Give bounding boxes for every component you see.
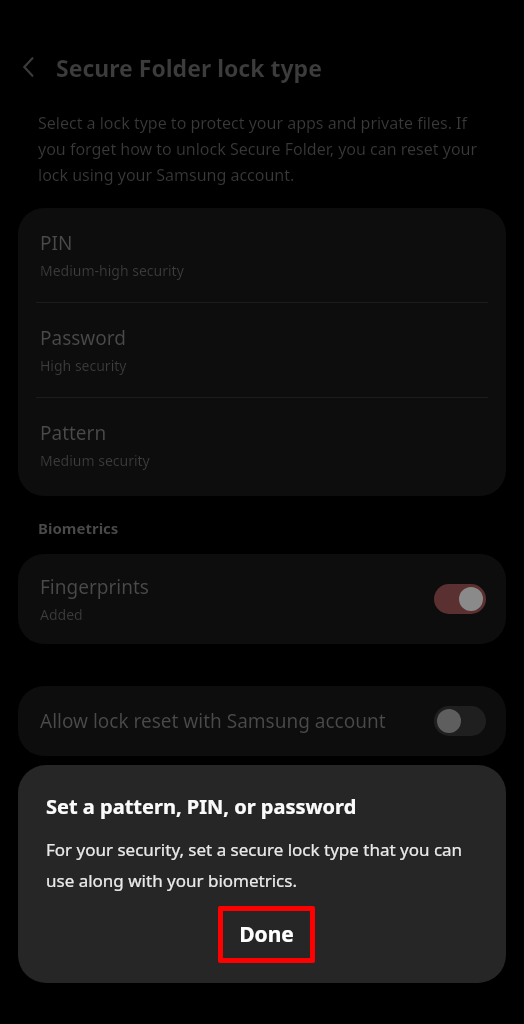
button[interactable]: Toggle off [434,706,486,736]
staticText: Select a lock type to protect your apps … [38,112,486,186]
staticText: PIN [40,230,73,256]
button[interactable]: Done [223,911,310,958]
button[interactable]: Password [18,303,506,397]
button[interactable]: Toggle on [434,584,486,614]
staticText: Medium-high security [40,261,184,280]
staticText: Added [40,605,83,624]
staticText: Password [40,325,126,351]
button[interactable]: PIN [18,208,506,302]
staticText: Secure Folder lock type [56,52,322,83]
staticText: High security [40,356,127,375]
staticText: Done [239,920,294,949]
button[interactable]: Fingerprints [18,554,506,644]
staticText: Allow lock reset with Samsung account [40,708,386,734]
staticText: Fingerprints [40,574,149,600]
staticText: For your security, set a secure lock typ… [46,838,478,892]
button[interactable]: Pattern [18,398,506,496]
staticText: Set a pattern, PIN, or password [46,793,357,820]
button[interactable]: Allow lock reset with Samsung account [18,686,506,756]
staticText: Medium security [40,451,150,470]
staticText: Pattern [40,420,107,446]
button[interactable]: Back [10,47,50,87]
staticText: Biometrics [38,518,119,538]
